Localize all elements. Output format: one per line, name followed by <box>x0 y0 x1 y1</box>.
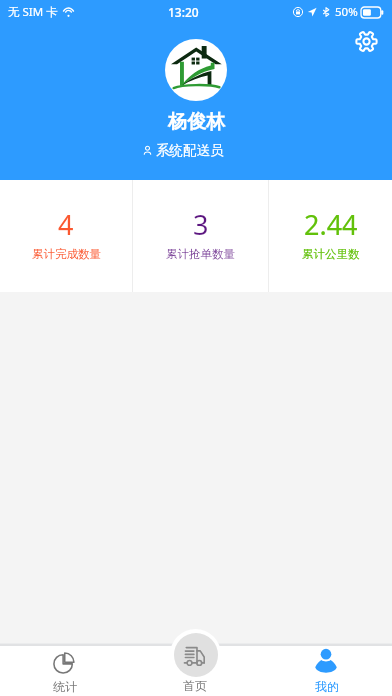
staticText: 50% <box>335 4 358 20</box>
button[interactable]: Settings <box>348 23 384 59</box>
button[interactable]: 首页 <box>136 643 256 696</box>
staticText: 首页 <box>183 678 207 693</box>
button[interactable]: 统计 <box>0 646 130 696</box>
staticText: 统计 <box>53 679 77 694</box>
button[interactable]: 我的 <box>261 646 392 696</box>
staticText: 13:20 <box>168 4 199 20</box>
button[interactable]: 2.44 <box>269 180 392 292</box>
staticText: 累计完成数量 <box>32 247 101 261</box>
staticText: 2.44 <box>304 206 358 243</box>
staticText: 累计公里数 <box>302 247 360 261</box>
staticText: 系统配送员 <box>156 142 224 159</box>
staticText: 杨俊林 <box>168 110 225 134</box>
staticText: 4 <box>58 206 74 243</box>
button[interactable]: 4 <box>0 180 132 292</box>
button[interactable]: 3 <box>133 180 268 292</box>
staticText: 3 <box>193 206 209 243</box>
staticText: 累计抢单数量 <box>166 247 235 261</box>
staticText: 我的 <box>315 679 339 694</box>
staticText: 无 SIM 卡 <box>8 4 58 20</box>
